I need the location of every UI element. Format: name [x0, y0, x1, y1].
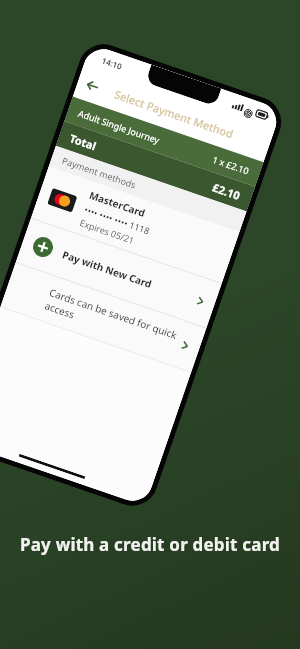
- staticText: £2.10: [210, 179, 243, 203]
- staticText: Payment methods: [61, 154, 138, 191]
- staticText: Pay with a credit or debit card: [0, 533, 300, 556]
- staticText: •••• •••• •••• 1118: [83, 203, 152, 237]
- staticText: MasterCard: [87, 188, 148, 220]
- staticText: Total: [68, 130, 215, 194]
- staticText: Adult Single Journey: [77, 107, 215, 164]
- staticText: Cards can be saved for quick access: [43, 285, 186, 358]
- staticText: 14:10: [100, 54, 124, 72]
- button[interactable]: Back: [73, 66, 111, 104]
- staticText: Expires 05/21: [78, 216, 136, 246]
- staticText: Select Payment Method: [112, 86, 235, 141]
- staticText: Pay with New Card: [61, 247, 154, 291]
- button[interactable]: MasterCard: [31, 166, 240, 283]
- button[interactable]: Cards can be saved for quick access: [0, 263, 206, 372]
- button[interactable]: Pay with New Card: [16, 218, 222, 328]
- staticText: 1 x £2.10: [211, 153, 251, 177]
